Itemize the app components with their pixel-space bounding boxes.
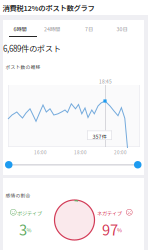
staticText: %	[26, 226, 31, 234]
button[interactable]: 7日	[73, 22, 105, 36]
button[interactable]: 30日	[106, 22, 138, 36]
staticText: ネガティブ	[97, 209, 122, 217]
staticText: 97	[102, 218, 118, 240]
staticText: 18:00	[74, 149, 87, 156]
staticText: 357件	[92, 132, 106, 140]
staticText: 6時間	[13, 25, 26, 33]
staticText: 20:00	[114, 149, 127, 156]
staticText: 16:00	[34, 149, 47, 156]
staticText: 24時間	[44, 25, 60, 33]
staticText: 消費税12%のポスト数グラフ	[2, 2, 94, 13]
staticText: 30日	[116, 25, 127, 33]
staticText: 7日	[85, 25, 93, 33]
staticText: ポスト数の推移	[5, 63, 40, 70]
button[interactable]: 24時間	[36, 22, 68, 36]
button[interactable]: 6時間	[4, 22, 36, 36]
staticText: 18:45	[99, 78, 112, 85]
staticText: ポジティブ	[17, 209, 42, 217]
staticText: 3	[19, 218, 27, 240]
staticText: 感情の割合	[5, 192, 30, 199]
staticText: %	[117, 226, 122, 234]
staticText: 6,689件のポスト	[3, 42, 61, 54]
